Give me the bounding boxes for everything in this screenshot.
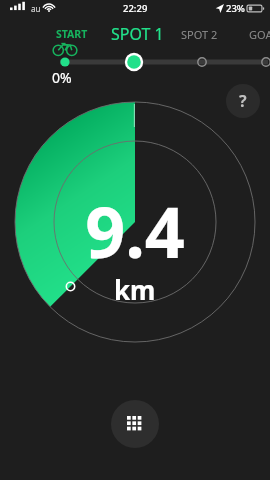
staticText: ? [239,90,247,112]
staticText: START [56,27,88,41]
button[interactable]: Help [226,84,260,118]
staticText: km [114,272,156,307]
staticText: 23% [226,2,245,15]
button[interactable]: Menu [111,400,159,448]
button[interactable]: SPOT 1 [110,22,165,46]
staticText: 22:29 [123,2,148,15]
staticText: SPOT 1 [111,23,164,45]
staticText: SPOT 2 [181,27,218,42]
button[interactable]: START [55,26,89,42]
button[interactable]: SPOT 2 [180,26,219,43]
staticText: GOAL [249,27,270,42]
staticText: 9.4 [85,183,185,278]
staticText: au [31,3,41,14]
staticText: 0% [52,68,72,87]
button[interactable]: GOAL [248,26,270,43]
